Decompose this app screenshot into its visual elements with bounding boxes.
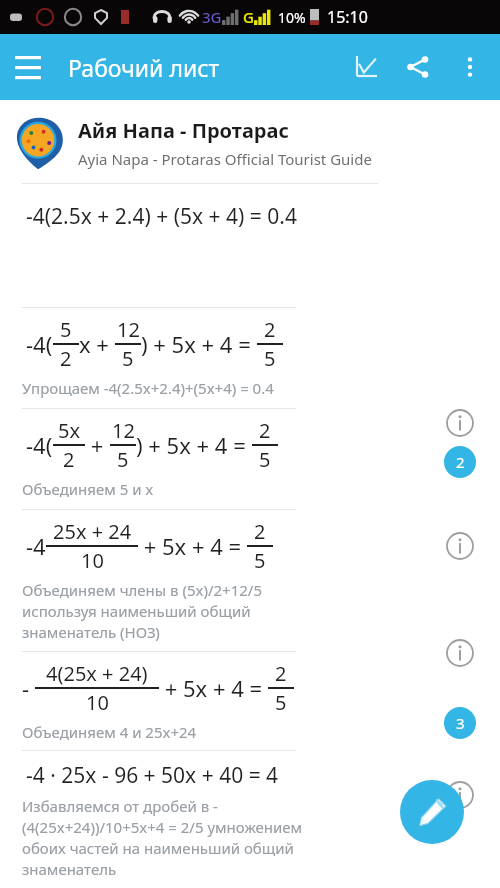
button[interactable]: Share: [392, 41, 444, 93]
staticText: 5: [259, 446, 271, 473]
button[interactable]: Step info: [440, 526, 480, 566]
staticText: Ayia Napa - Protaras Official Tourist Gu…: [78, 149, 372, 169]
staticText: -4(: [26, 430, 53, 460]
staticText: -4: [26, 531, 46, 561]
staticText: 15:10: [327, 6, 368, 28]
staticText: Айя Напа - Протарас: [78, 117, 289, 144]
staticText: 2: [60, 345, 72, 372]
staticText: -4(2.5x + 2.4) + (5x + 4) = 0.4: [26, 202, 297, 231]
staticText: 5x: [58, 417, 81, 444]
button[interactable]: Step info: [440, 633, 480, 673]
staticText: 5: [117, 446, 129, 473]
staticText: 2: [456, 452, 465, 472]
button[interactable]: Open navigation drawer: [0, 39, 56, 95]
staticText: 12: [117, 316, 140, 343]
staticText: 10%: [278, 8, 306, 27]
staticText: 10: [81, 547, 104, 574]
staticText: 25x + 24: [53, 518, 132, 545]
staticText: Рабочий лист: [68, 52, 220, 83]
staticText: 10: [86, 689, 109, 716]
staticText: -: [22, 673, 35, 703]
staticText: G: [243, 7, 254, 27]
staticText: 5: [264, 345, 276, 372]
staticText: 5: [275, 689, 287, 716]
staticText: Объединяем члены в (5x)/2+12/5 используя…: [22, 580, 262, 643]
staticText: -4 · 25x - 96 + 50x + 40 = 4: [26, 761, 279, 790]
staticText: 5: [60, 316, 72, 343]
button[interactable]: Step info: [440, 403, 480, 443]
button[interactable]: Edit: [400, 780, 464, 844]
button[interactable]: Айя Напа - Протарас: [0, 100, 500, 182]
staticText: + 5x + 4 =: [138, 531, 247, 561]
staticText: Объединяем 4 и 25x+24: [22, 722, 197, 742]
staticText: Объединяем 5 и x: [22, 479, 154, 499]
staticText: 2: [275, 660, 287, 687]
staticText: + 5x + 4 =: [159, 673, 268, 703]
staticText: Упрощаем -4(2.5x+2.4)+(5x+4) = 0.4: [22, 378, 274, 398]
staticText: 12: [112, 417, 135, 444]
button[interactable]: 3: [444, 707, 476, 739]
staticText: 4(25x + 24): [46, 660, 148, 687]
staticText: -4(: [26, 329, 53, 359]
staticText: 2: [63, 446, 75, 473]
button[interactable]: 2: [444, 446, 476, 478]
staticText: 2: [259, 417, 271, 444]
staticText: Избавляемся от дробей в - (4(25x+24))/10…: [22, 796, 303, 880]
staticText: +: [85, 430, 110, 460]
staticText: ) + 5x + 4 =: [136, 430, 252, 460]
button[interactable]: Step info: [440, 775, 480, 815]
staticText: 3: [456, 713, 465, 733]
staticText: 5: [254, 547, 266, 574]
button[interactable]: More options: [444, 41, 496, 93]
staticText: 5: [122, 345, 134, 372]
staticText: 3G: [202, 7, 222, 27]
staticText: 2: [254, 518, 266, 545]
staticText: ) + 5x + 4 =: [141, 329, 257, 359]
button[interactable]: Graph: [340, 41, 392, 93]
staticText: x +: [79, 329, 115, 359]
staticText: 2: [264, 316, 276, 343]
